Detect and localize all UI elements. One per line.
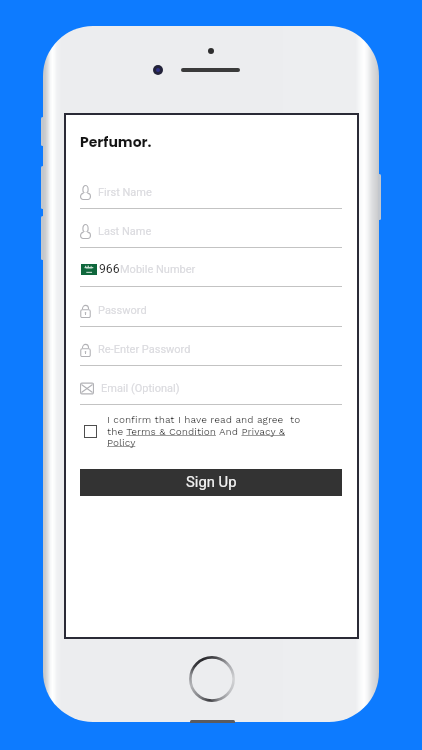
button[interactable]: First Name bbox=[80, 185, 342, 207]
staticText: First Name bbox=[98, 186, 152, 199]
staticText: 966 bbox=[99, 262, 120, 276]
button[interactable]: Password bbox=[80, 303, 342, 325]
button[interactable]: Sign Up bbox=[80, 469, 342, 496]
other: Saudi Arabia country code bbox=[81, 264, 97, 275]
staticText: Sign Up bbox=[186, 473, 237, 490]
button[interactable]: I confirm that I have read and agree to … bbox=[84, 413, 329, 449]
button[interactable]: Last Name bbox=[80, 224, 342, 246]
staticText: I confirm that I have read and agree to … bbox=[107, 414, 304, 448]
staticText: Perfumor. bbox=[80, 132, 152, 152]
staticText: Mobile Number bbox=[120, 263, 196, 276]
staticText: Email (Optional) bbox=[101, 382, 180, 395]
other: Home bbox=[189, 656, 235, 702]
staticText: Password bbox=[98, 304, 147, 317]
staticText: Last Name bbox=[98, 225, 152, 238]
button[interactable]: Saudi Arabia country code bbox=[81, 262, 342, 284]
staticText: Re-Enter Password bbox=[98, 343, 191, 356]
button[interactable]: Re-Enter Password bbox=[80, 342, 342, 364]
button[interactable]: Email (Optional) bbox=[80, 381, 342, 403]
